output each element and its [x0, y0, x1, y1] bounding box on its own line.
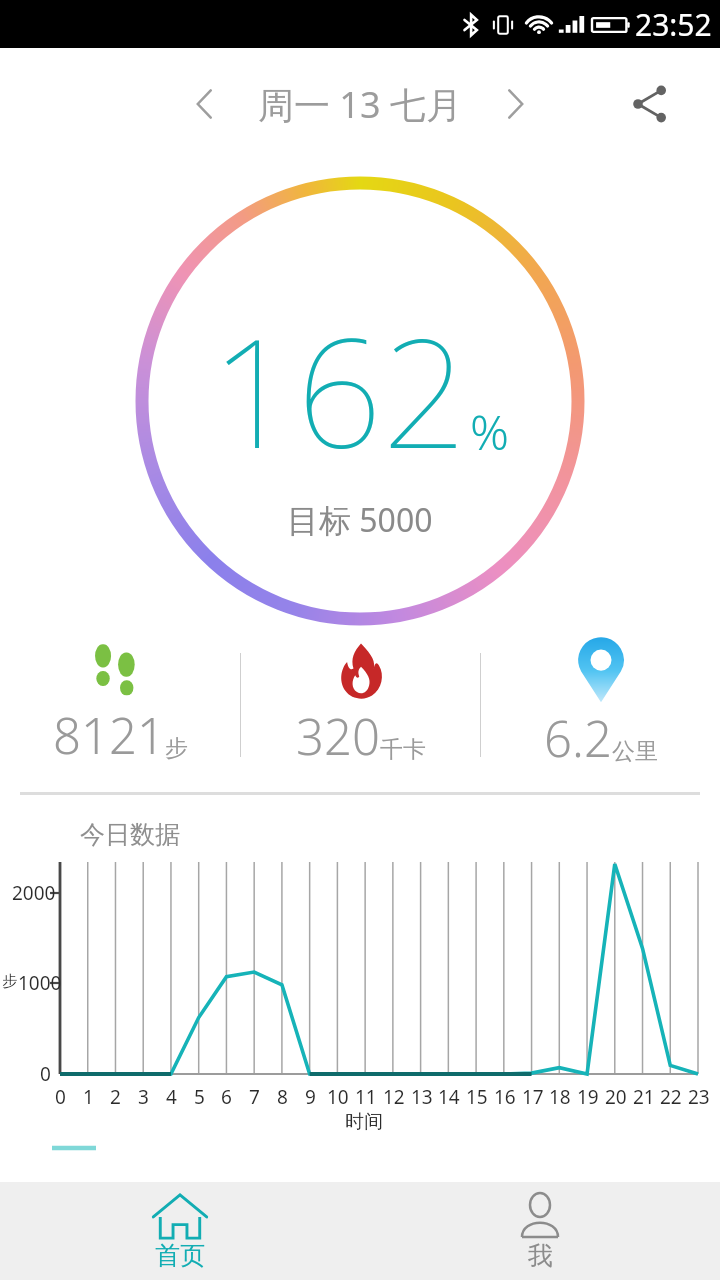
staticText: 16	[494, 1084, 516, 1110]
staticText: 14	[438, 1084, 460, 1110]
staticText: 周一 13 七月	[258, 80, 462, 129]
staticText: 15	[466, 1084, 488, 1110]
staticText: 7	[249, 1084, 260, 1110]
staticText: 0	[55, 1084, 66, 1110]
staticText: 5	[194, 1084, 205, 1110]
staticText: 11	[355, 1084, 377, 1110]
staticText: 1	[83, 1084, 94, 1110]
staticText: 21	[633, 1084, 655, 1110]
staticText: 23	[688, 1084, 710, 1110]
staticText: %	[470, 399, 509, 464]
button[interactable]: Previous day	[176, 75, 234, 133]
button[interactable]: Steps	[0, 630, 240, 780]
staticText: 1000	[18, 970, 62, 996]
staticText: 目标 5000	[287, 498, 433, 542]
staticText: 20	[605, 1084, 627, 1110]
staticText: 步	[2, 972, 17, 991]
staticText: 我	[528, 1240, 553, 1271]
button[interactable]: Next day	[486, 75, 544, 133]
button[interactable]: Share	[620, 74, 680, 134]
staticText: 首页	[155, 1240, 205, 1271]
other: Steps	[88, 642, 152, 700]
staticText: 9	[305, 1084, 316, 1110]
staticText: 千卡	[380, 735, 426, 764]
staticText: 10	[327, 1084, 349, 1110]
staticText: 18	[549, 1084, 571, 1110]
staticText: 4	[166, 1084, 177, 1110]
staticText: 今日数据	[80, 819, 180, 850]
staticText: 23:52	[635, 4, 712, 45]
button[interactable]: Distance	[481, 630, 720, 780]
staticText: 19	[577, 1084, 599, 1110]
other: Calories	[332, 641, 390, 701]
staticText: 2	[110, 1084, 121, 1110]
staticText: 6	[221, 1084, 232, 1110]
button[interactable]: Calories	[241, 630, 480, 780]
staticText: 320	[296, 703, 380, 770]
staticText: 时间	[345, 1110, 383, 1134]
staticText: 步	[165, 734, 188, 763]
staticText: 2000	[12, 880, 56, 906]
staticText: 8	[277, 1084, 288, 1110]
staticText: 公里	[612, 737, 658, 766]
staticText: 17	[522, 1084, 544, 1110]
button[interactable]: 我	[360, 1182, 720, 1280]
other: Distance	[575, 639, 627, 703]
staticText: 162	[211, 288, 468, 492]
staticText: 0	[40, 1061, 51, 1087]
staticText: 13	[411, 1084, 433, 1110]
staticText: 6.2	[544, 705, 612, 772]
staticText: 3	[138, 1084, 149, 1110]
staticText: 8121	[53, 702, 165, 769]
staticText: 22	[660, 1084, 682, 1110]
button[interactable]: 首页	[0, 1182, 360, 1280]
staticText: 12	[383, 1084, 405, 1110]
